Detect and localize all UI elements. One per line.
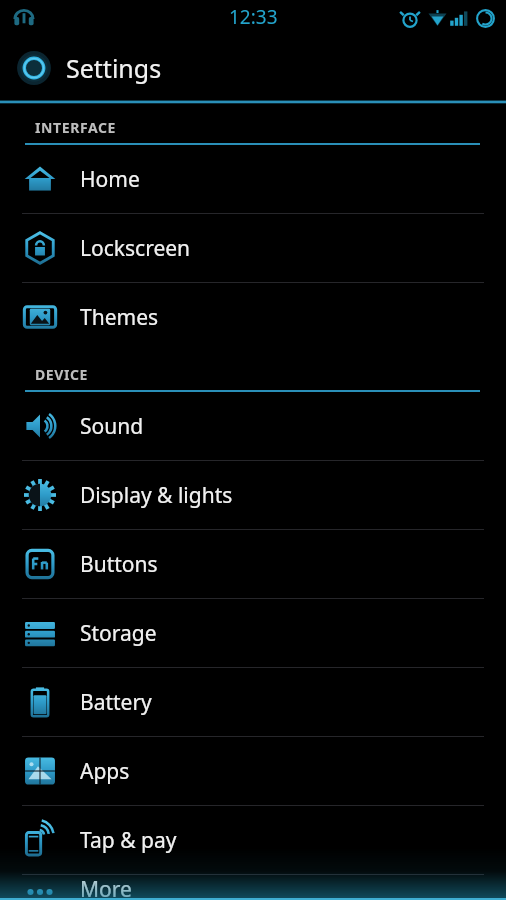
staticText: Sound (80, 412, 144, 441)
staticText: Lockscreen (80, 234, 191, 263)
button[interactable]: Buttons (0, 530, 506, 598)
staticText: More (80, 875, 132, 900)
button[interactable]: Battery (0, 668, 506, 736)
other: CyanogenMod logo (16, 50, 52, 86)
staticText: Buttons (80, 550, 158, 579)
staticText: Battery (80, 688, 152, 717)
button[interactable]: Display & lights (0, 461, 506, 529)
button[interactable]: Home (0, 145, 506, 213)
button[interactable]: Sound (0, 392, 506, 460)
button[interactable]: Tap & pay (0, 806, 506, 874)
staticText: DEVICE (35, 365, 89, 384)
button[interactable]: More (0, 875, 506, 900)
staticText: Themes (80, 303, 159, 332)
button[interactable]: Storage (0, 599, 506, 667)
staticText: Storage (80, 619, 157, 648)
button[interactable]: Lockscreen (0, 214, 506, 282)
staticText: Tap & pay (80, 826, 177, 855)
button[interactable]: Apps (0, 737, 506, 805)
staticText: Apps (80, 757, 130, 786)
staticText: Settings (66, 51, 162, 85)
staticText: 12:33 (229, 4, 278, 30)
staticText: Display & lights (80, 481, 233, 510)
staticText: INTERFACE (35, 118, 116, 137)
staticText: Home (80, 165, 140, 194)
button[interactable]: Themes (0, 283, 506, 351)
